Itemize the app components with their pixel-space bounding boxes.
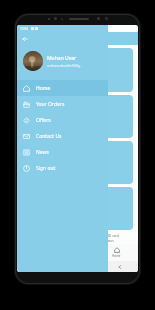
button[interactable]: Track <box>22 141 133 184</box>
button[interactable]: Home <box>110 245 123 260</box>
staticText: Mohan User <box>47 55 77 62</box>
button[interactable]: Back <box>116 263 124 271</box>
staticText: Order status <box>95 239 114 243</box>
staticText: Request ID card <box>95 234 119 238</box>
button[interactable]: Contact Us <box>17 128 108 144</box>
button[interactable]: Place Order <box>22 48 133 92</box>
button[interactable]: Home <box>17 80 108 96</box>
staticText: Contact Us <box>36 133 62 140</box>
staticText: mohancdreathr038g. <box>47 63 81 68</box>
button[interactable]: Request ID <box>22 187 133 230</box>
button[interactable]: Offers <box>17 112 108 128</box>
button[interactable]: Mohan User <box>23 45 104 77</box>
button[interactable]: Your Orders <box>17 96 108 112</box>
button[interactable]: Pay Bill <box>22 95 133 138</box>
staticText: 10:56 <box>20 27 29 31</box>
staticText: Place Order <box>64 67 92 74</box>
button[interactable]: Back <box>20 34 29 43</box>
staticText: Sign out <box>36 165 56 172</box>
staticText: Home <box>36 85 51 92</box>
staticText: Home <box>112 254 121 258</box>
staticText: Offers <box>36 117 51 124</box>
button[interactable]: Sign out <box>17 160 108 176</box>
button[interactable]: News <box>17 144 108 160</box>
staticText: News <box>36 149 49 156</box>
staticText: Your Orders <box>36 101 65 108</box>
